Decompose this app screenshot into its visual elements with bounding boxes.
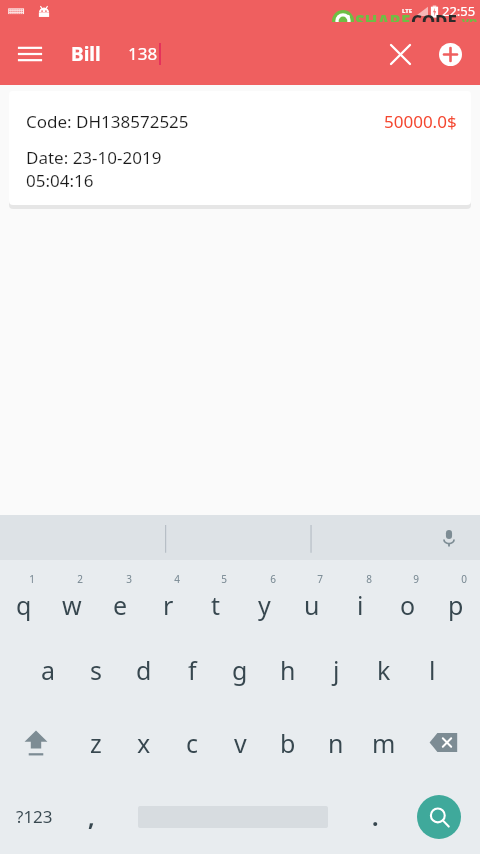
staticText: t — [211, 588, 221, 622]
staticText: 3 — [126, 572, 132, 586]
button[interactable]: ?123 — [0, 779, 68, 854]
button[interactable]: a — [24, 633, 72, 706]
button[interactable]: f — [168, 633, 216, 706]
staticText: 138 — [128, 42, 158, 65]
button[interactable]: Open navigation menu — [12, 36, 48, 72]
staticText: CODE — [411, 10, 458, 32]
staticText: SHARE — [355, 10, 411, 32]
staticText: 6 — [270, 572, 276, 586]
staticText: 1 — [29, 572, 35, 586]
button[interactable]: , — [68, 779, 114, 854]
button[interactable]: Backspace — [408, 706, 480, 779]
button[interactable]: 5 — [192, 560, 240, 633]
staticText: 50000.0$ — [384, 110, 457, 133]
button[interactable]: s — [72, 633, 120, 706]
button[interactable]: . — [352, 779, 398, 854]
staticText: m — [372, 726, 396, 760]
staticText: y — [258, 588, 271, 622]
button[interactable]: 2 — [48, 560, 96, 633]
staticText: h — [280, 653, 296, 687]
button[interactable]: j — [312, 633, 360, 706]
staticText: Date: 23-10-2019 — [26, 146, 162, 169]
staticText: j — [333, 653, 340, 687]
staticText: z — [90, 726, 102, 760]
button[interactable]: h — [264, 633, 312, 706]
button[interactable]: x — [120, 706, 168, 779]
staticText: r — [163, 588, 174, 622]
button[interactable]: 0 — [432, 560, 480, 633]
staticText: o — [400, 588, 416, 622]
staticText: 7 — [317, 572, 323, 586]
button[interactable]: Code: DH138572525 — [9, 91, 471, 205]
button[interactable]: c — [168, 706, 216, 779]
button[interactable]: Clear search — [380, 34, 420, 74]
staticText: 4 — [174, 572, 180, 586]
button[interactable]: Shift — [0, 706, 72, 779]
staticText: ?123 — [16, 805, 53, 828]
staticText: .vn — [458, 12, 478, 30]
button[interactable]: 6 — [240, 560, 288, 633]
button[interactable]: Search — [398, 779, 480, 854]
button[interactable]: 1 — [0, 560, 48, 633]
staticText: 0 — [461, 572, 467, 586]
staticText: q — [16, 588, 32, 622]
staticText: n — [328, 726, 344, 760]
button[interactable]: d — [120, 633, 168, 706]
staticText: p — [448, 588, 464, 622]
staticText: , — [88, 801, 95, 832]
staticText: k — [377, 653, 391, 687]
staticText: e — [113, 588, 128, 622]
staticText: g — [232, 653, 248, 687]
staticText: u — [304, 588, 320, 622]
button[interactable]: n — [312, 706, 360, 779]
staticText: w — [62, 588, 82, 622]
staticText: Code: DH138572525 — [26, 110, 189, 133]
staticText: 8 — [366, 572, 372, 586]
button[interactable]: g — [216, 633, 264, 706]
staticText: i — [357, 588, 364, 622]
staticText: 9 — [413, 572, 419, 586]
staticText: a — [41, 653, 56, 687]
button[interactable]: v — [216, 706, 264, 779]
staticText: 22:55 — [442, 2, 476, 20]
button[interactable]: b — [264, 706, 312, 779]
button[interactable]: Add bill — [430, 34, 470, 74]
staticText: Bill — [71, 41, 101, 67]
staticText: 05:04:16 — [26, 169, 94, 192]
button[interactable]: z — [72, 706, 120, 779]
button[interactable]: 8 — [336, 560, 384, 633]
button[interactable]: Space — [114, 779, 352, 854]
staticText: LTE — [402, 7, 413, 15]
staticText: c — [186, 726, 199, 760]
staticText: x — [137, 726, 151, 760]
staticText: l — [429, 653, 436, 687]
button[interactable]: Voice input — [432, 521, 466, 555]
button[interactable]: k — [360, 633, 408, 706]
button[interactable]: 7 — [288, 560, 336, 633]
button[interactable]: 4 — [144, 560, 192, 633]
staticText: v — [234, 726, 247, 760]
staticText: f — [188, 653, 197, 687]
staticText: d — [136, 653, 152, 687]
staticText: . — [372, 801, 379, 832]
button[interactable]: 3 — [96, 560, 144, 633]
staticText: s — [90, 653, 102, 687]
button[interactable]: 9 — [384, 560, 432, 633]
staticText: 5 — [221, 572, 227, 586]
button[interactable]: m — [360, 706, 408, 779]
button[interactable]: l — [408, 633, 456, 706]
staticText: b — [280, 726, 296, 760]
staticText: 2 — [77, 572, 83, 586]
